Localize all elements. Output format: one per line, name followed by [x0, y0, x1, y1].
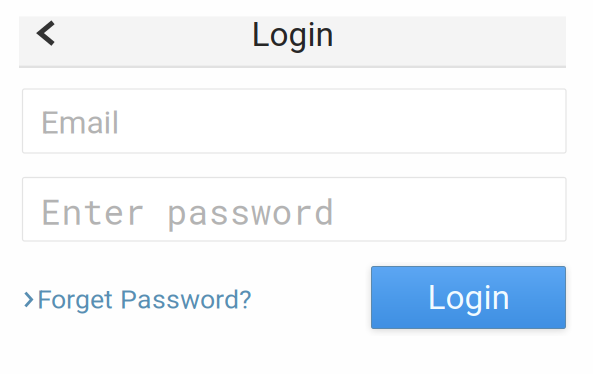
button[interactable]: Forget Password? [24, 268, 252, 330]
button[interactable]: Login [371, 266, 565, 328]
staticText: Email [40, 104, 119, 141]
staticText: Login [427, 278, 509, 317]
staticText: Enter password [40, 188, 334, 234]
staticText: Login [251, 15, 333, 54]
button[interactable]: Back [37, 13, 89, 53]
staticText: Forget Password? [37, 284, 252, 315]
